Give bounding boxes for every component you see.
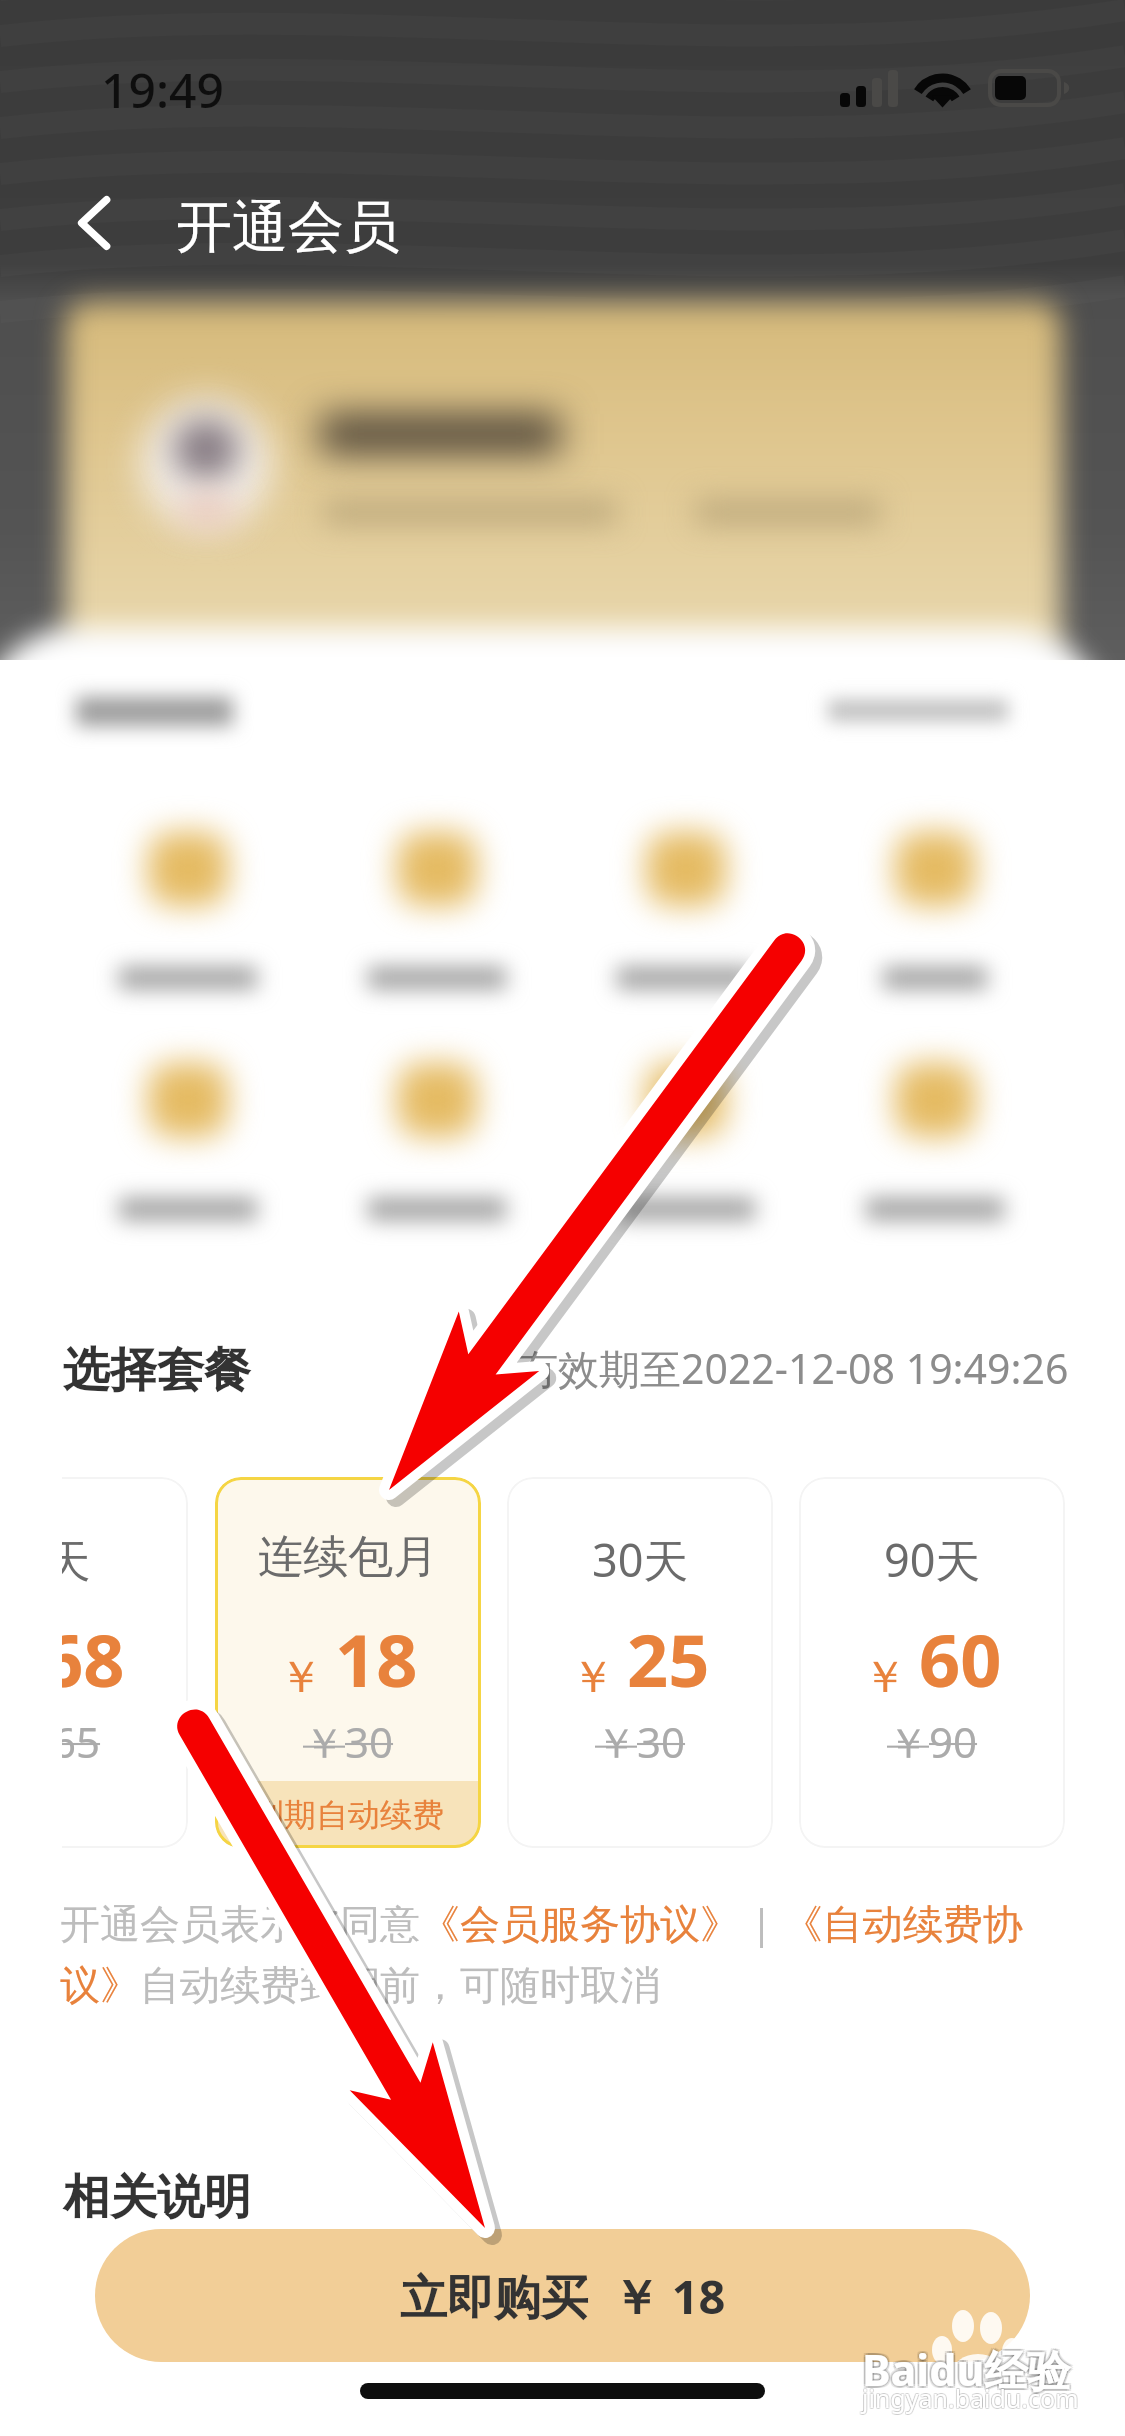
staticText: 选择套餐 [63, 1341, 251, 1400]
staticText: 相关说明 [63, 2168, 251, 2227]
button[interactable]: 5天 [62, 1477, 188, 1848]
staticText: 60 [919, 1610, 1002, 1708]
staticText: Baidu经验 [860, 2342, 1069, 2401]
staticText: 5天 [62, 1529, 91, 1590]
staticText: 开通会员 [176, 192, 400, 263]
staticText: ￥65 [62, 1713, 101, 1770]
staticText: 18 [335, 1610, 418, 1708]
button[interactable]: 到期自动续费 [215, 1477, 481, 1848]
staticText: jingyan.baidu.com [861, 2382, 1078, 2416]
staticText: Baidu经验 [860, 2340, 1069, 2399]
button[interactable]: 30天 [507, 1477, 773, 1848]
staticText: jingyan.baidu.com [863, 2380, 1080, 2414]
staticText: ￥ [571, 1650, 615, 1705]
staticText: Baidu经验 [864, 2340, 1073, 2399]
staticText: jingyan.baidu.com [861, 2380, 1078, 2414]
staticText: ￥30 [303, 1713, 394, 1770]
staticText: jingyan.baidu.com [862, 2382, 1079, 2416]
staticText: Baidu经验 [860, 2338, 1069, 2397]
staticText: 25 [627, 1610, 710, 1708]
staticText: jingyan.baidu.com [862, 2380, 1079, 2414]
staticText: 90天 [884, 1529, 981, 1590]
staticText: jingyan.baidu.com [863, 2381, 1080, 2415]
staticText: Baidu经验 [864, 2342, 1073, 2401]
staticText: 立即购买 ￥ 18 [400, 2264, 726, 2328]
staticText: ￥90 [887, 1713, 978, 1770]
staticText: Baidu经验 [862, 2338, 1071, 2397]
staticText: 连续包月 [258, 1529, 438, 1586]
staticText: jingyan.baidu.com [863, 2382, 1080, 2416]
staticText: Baidu经验 [864, 2338, 1073, 2397]
staticText: 68 [62, 1610, 125, 1708]
staticText: 30天 [592, 1529, 689, 1590]
staticText: 19:49 [101, 57, 224, 122]
staticText: jingyan.baidu.com [861, 2381, 1078, 2415]
staticText: 有效期至2022-12-08 19:49:26 [517, 1340, 1069, 1396]
staticText: jingyan.baidu.com [862, 2381, 1079, 2415]
staticText: ￥ [279, 1650, 323, 1705]
staticText: 到期自动续费 [252, 1795, 444, 1835]
button[interactable]: 立即购买 ￥ 18 [95, 2229, 1030, 2362]
button[interactable]: Back [40, 168, 150, 278]
staticText: Baidu经验 [862, 2342, 1071, 2401]
staticText: Baidu经验 [862, 2340, 1071, 2399]
staticText: ￥30 [595, 1713, 686, 1770]
button[interactable]: 90天 [799, 1477, 1065, 1848]
staticText: ￥ [863, 1650, 907, 1705]
staticText: 开通会员表示您同意《会员服务协议》 | 《自动续费协议》自动续费到期前，可随时取… [60, 1895, 1063, 2010]
